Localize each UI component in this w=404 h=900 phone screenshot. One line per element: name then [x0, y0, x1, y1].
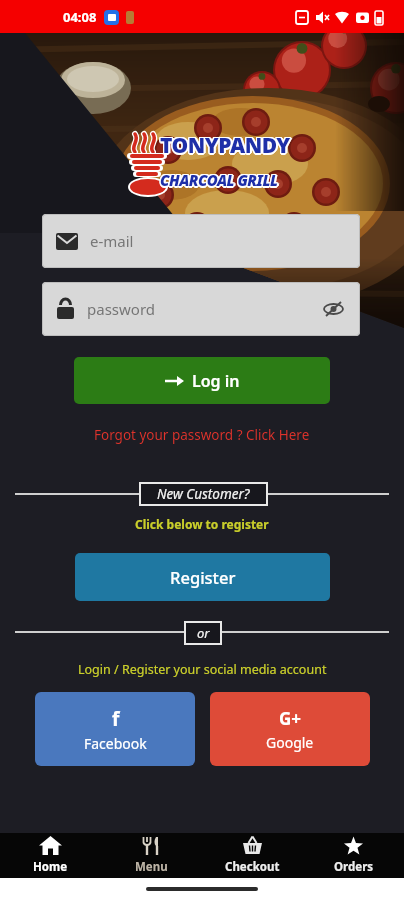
staticText: TONYPANDY — [160, 131, 290, 160]
staticText: TONYPANDY — [161, 130, 291, 159]
staticText: CHARCOAL GRILL — [159, 169, 277, 189]
staticText: Google — [266, 733, 314, 752]
staticText: Forgot your password ? Click Here — [94, 426, 310, 444]
staticText: TONYPANDY — [161, 132, 291, 161]
button[interactable]: G+ — [210, 692, 370, 766]
staticText: f — [112, 706, 120, 732]
staticText: TONYPANDY — [160, 133, 290, 162]
staticText: TONYPANDY — [160, 130, 290, 159]
staticText: TONYPANDY — [159, 130, 289, 159]
button[interactable]: Forgot your password ? Click Here — [0, 426, 404, 444]
staticText: New Customer? — [157, 485, 250, 503]
staticText: CHARCOAL GRILL — [162, 170, 280, 190]
staticText: CHARCOAL GRILL — [160, 170, 278, 190]
staticText: CHARCOAL GRILL — [160, 169, 278, 189]
button[interactable]: Menu — [101, 836, 202, 875]
staticText: Facebook — [84, 734, 147, 753]
staticText: Register — [170, 566, 236, 588]
button[interactable]: e-mail — [42, 214, 360, 268]
staticText: CHARCOAL GRILL — [161, 169, 279, 189]
staticText: Click below to register — [135, 516, 269, 532]
button[interactable]: f — [35, 692, 195, 766]
staticText: TONYPANDY — [162, 131, 292, 160]
staticText: e-mail — [90, 231, 134, 251]
staticText: Menu — [135, 859, 168, 875]
staticText: Checkout — [225, 859, 280, 875]
staticText: TONYPANDY — [159, 132, 289, 161]
staticText: Orders — [334, 859, 374, 875]
staticText: G+ — [279, 707, 302, 730]
staticText: Log in — [192, 370, 240, 392]
staticText: CHARCOAL GRILL — [161, 171, 279, 191]
staticText: CHARCOAL GRILL — [159, 170, 277, 190]
staticText: TONYPANDY — [159, 131, 289, 160]
button[interactable]: Register — [75, 553, 330, 601]
staticText: CHARCOAL GRILL — [160, 172, 278, 192]
button[interactable]: Log in — [74, 357, 330, 404]
staticText: 04:08 — [63, 8, 97, 26]
staticText: password — [87, 299, 155, 319]
staticText: CHARCOAL GRILL — [159, 171, 277, 191]
button[interactable]: Home — [0, 836, 101, 875]
staticText: Login / Register your social media accou… — [78, 661, 327, 678]
staticText: Home — [33, 859, 68, 875]
button[interactable]: Orders — [303, 836, 404, 875]
button[interactable]: password — [42, 282, 360, 336]
button[interactable]: Checkout — [202, 836, 303, 875]
staticText: or — [197, 624, 210, 642]
